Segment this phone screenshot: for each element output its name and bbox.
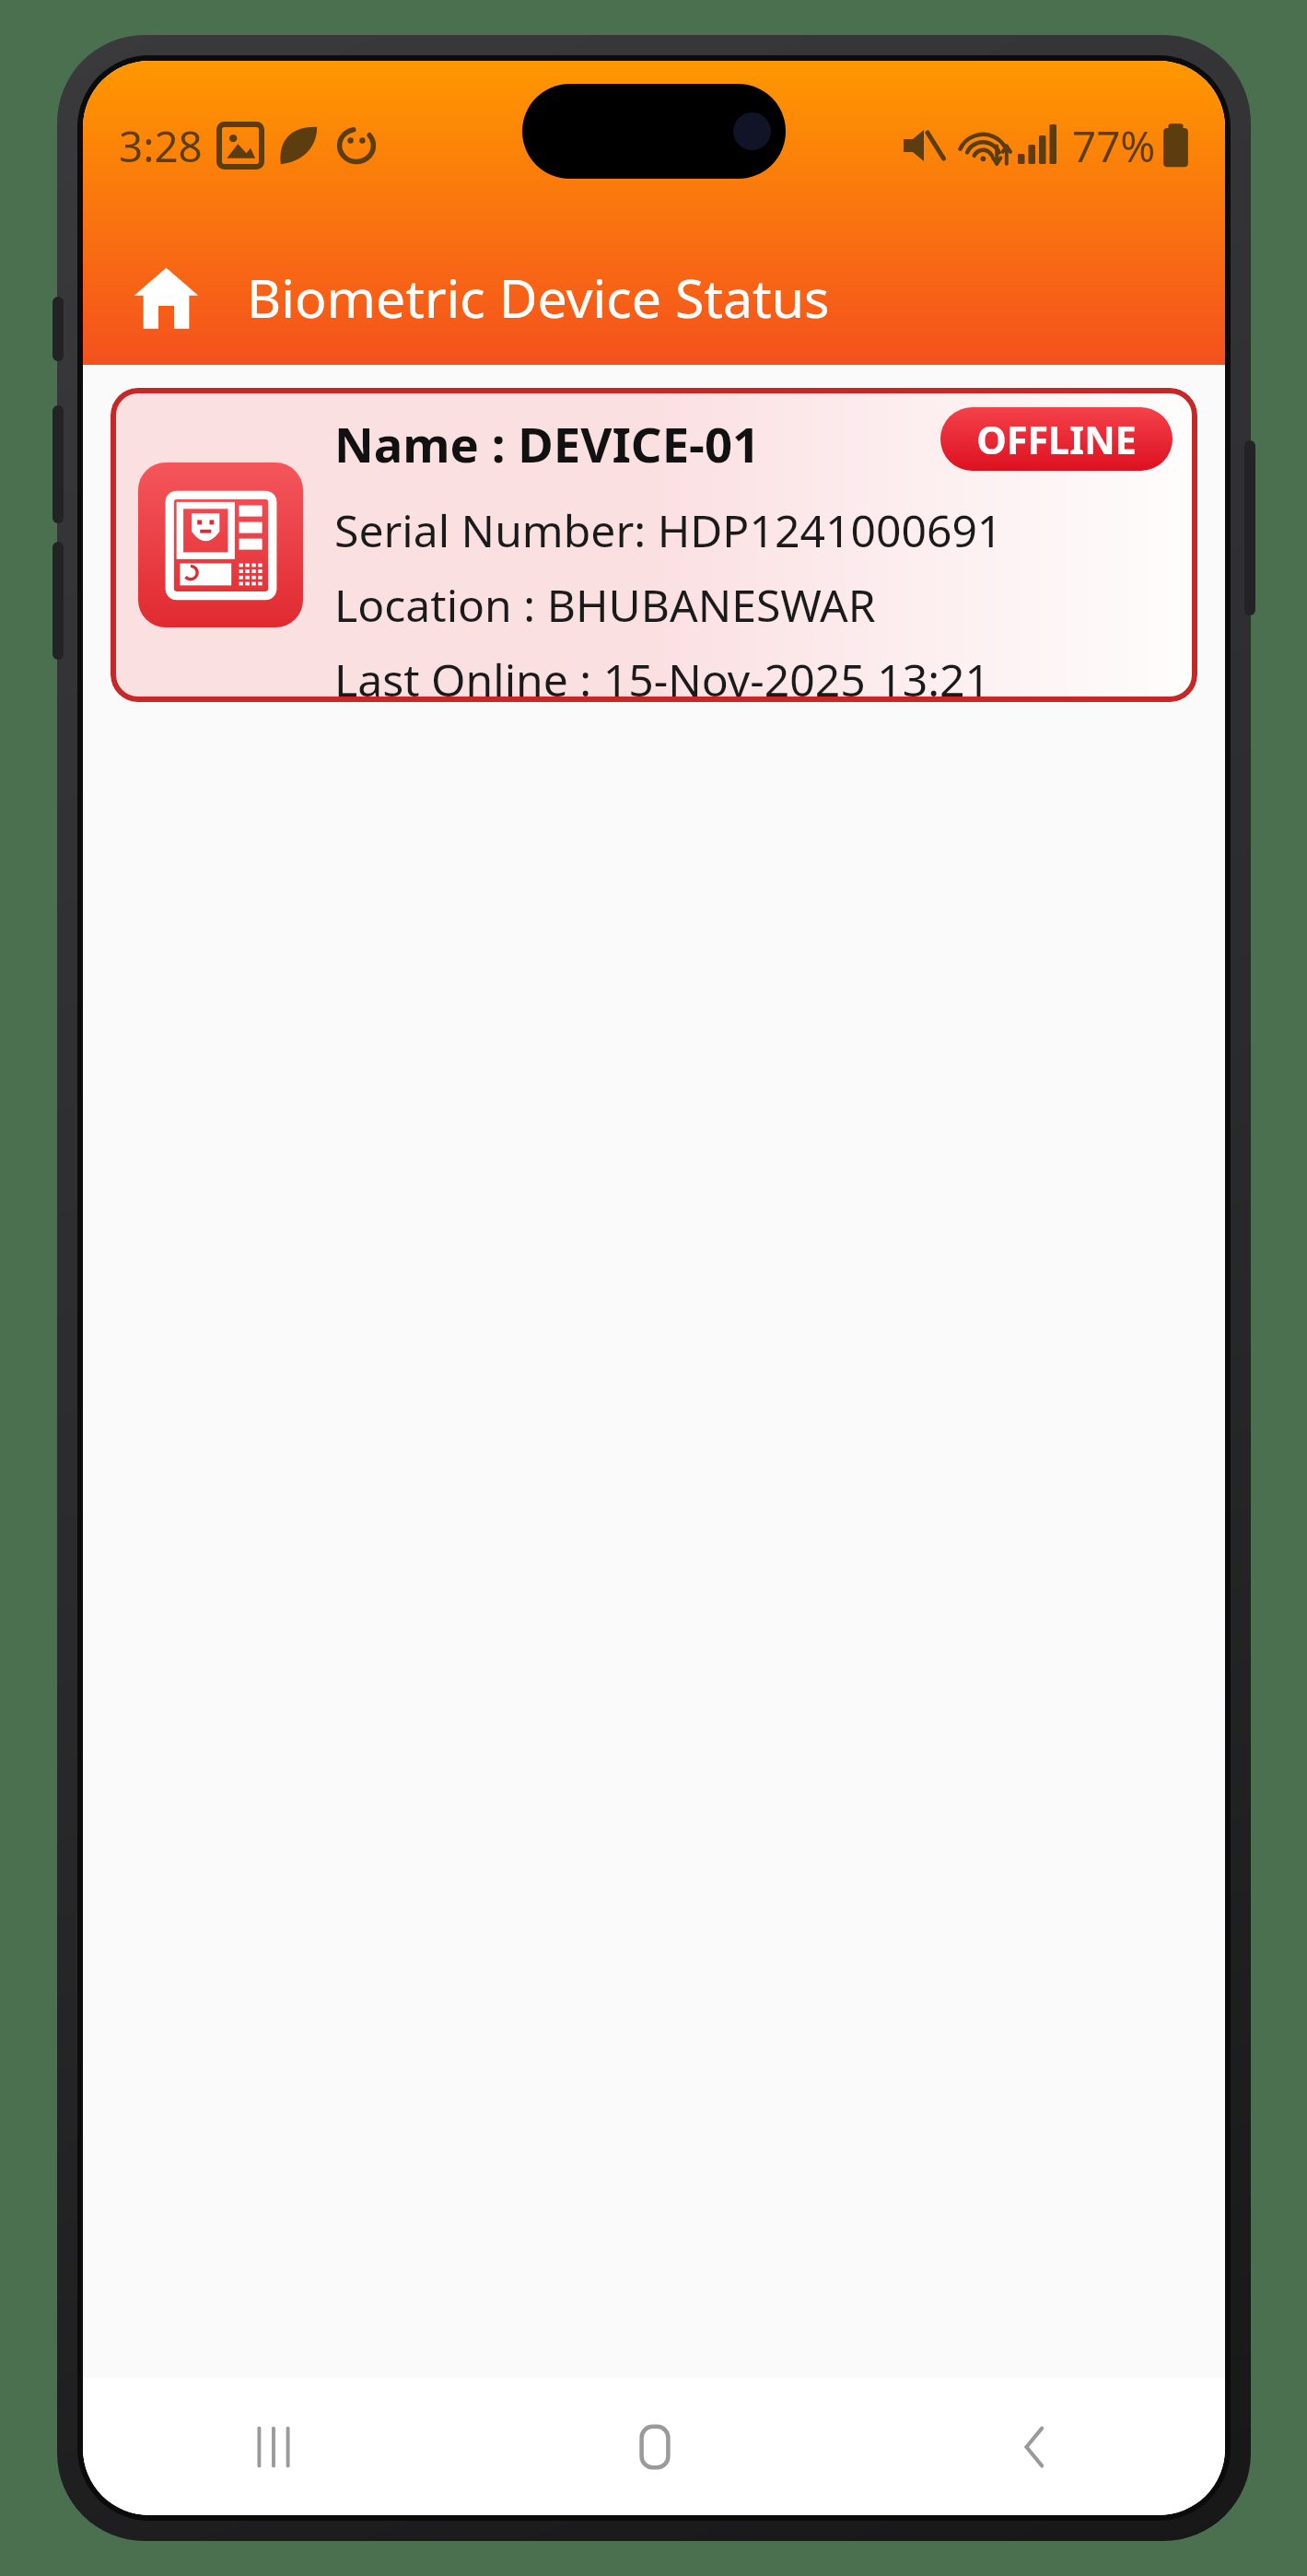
button[interactable]: OFFLINE [940, 407, 1173, 471]
staticText: Serial Number: HDP1241000691 [334, 500, 1003, 560]
button[interactable]: Name : DEVICE-01 [111, 388, 1197, 702]
staticText: Last Online : 15-Nov-2025 13:21 [334, 650, 991, 702]
button[interactable]: Home [464, 2378, 845, 2515]
staticText: Location : BHUBANESWAR [334, 575, 876, 635]
button[interactable]: Back [845, 2378, 1225, 2515]
button[interactable]: Home [121, 252, 211, 343]
staticText: OFFLINE [976, 414, 1137, 465]
button[interactable]: Recent apps [83, 2378, 464, 2515]
staticText: Biometric Device Status [247, 262, 830, 334]
staticText: 3:28 [119, 117, 203, 174]
staticText: Name : DEVICE-01 [334, 411, 761, 477]
staticText: 77% [1072, 117, 1156, 174]
